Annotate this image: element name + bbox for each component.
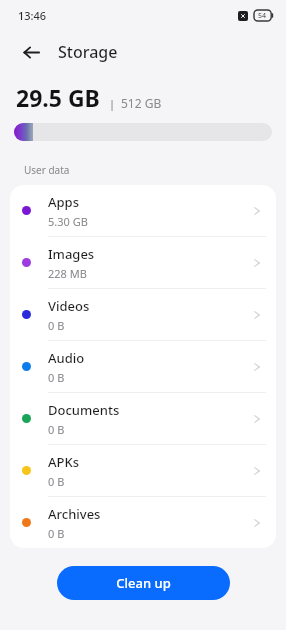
staticText: 5.30 GB (48, 214, 88, 229)
staticText: Archives (48, 505, 101, 523)
staticText: Documents (48, 401, 120, 419)
staticText: | (109, 96, 116, 111)
staticText: 512 GB (121, 95, 162, 111)
button[interactable]: Documents (10, 393, 276, 444)
staticText: 13:46 (18, 8, 47, 23)
staticText: 228 MB (48, 266, 87, 281)
staticText: 0 B (48, 474, 65, 489)
button[interactable]: Apps (10, 185, 276, 236)
button[interactable]: Back (14, 35, 48, 69)
staticText: Videos (48, 297, 90, 315)
staticText: Apps (48, 193, 79, 211)
staticText: User data (24, 163, 70, 177)
staticText: 0 B (48, 370, 65, 385)
button[interactable]: Videos (10, 289, 276, 340)
staticText: APKs (48, 453, 79, 471)
button[interactable]: Archives (10, 497, 276, 548)
staticText: 0 B (48, 422, 65, 437)
staticText: Audio (48, 349, 85, 367)
staticText: Clean up (116, 574, 171, 592)
staticText: 54 (258, 11, 267, 21)
button[interactable]: APKs (10, 445, 276, 496)
button[interactable]: Images (10, 237, 276, 288)
staticText: Images (48, 245, 95, 263)
staticText: 0 B (48, 318, 65, 333)
staticText: Storage (58, 41, 118, 63)
staticText: 29.5 GB (16, 82, 100, 113)
button[interactable]: Clean up (57, 566, 230, 600)
button[interactable]: Audio (10, 341, 276, 392)
staticText: 0 B (48, 526, 65, 541)
